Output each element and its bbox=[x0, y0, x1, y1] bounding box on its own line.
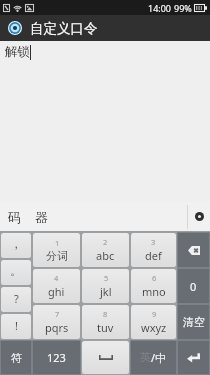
button[interactable]: Delete bbox=[178, 233, 209, 267]
staticText: 器 bbox=[35, 209, 48, 225]
button[interactable]: 6 bbox=[131, 269, 176, 303]
staticText: 分词 bbox=[46, 249, 68, 263]
staticText: def bbox=[145, 248, 162, 263]
button[interactable]: Enter bbox=[178, 341, 209, 374]
staticText: 99% bbox=[174, 2, 192, 14]
button[interactable]: Space bbox=[82, 341, 129, 374]
button[interactable]: 9 bbox=[131, 305, 176, 339]
button[interactable]: 1 bbox=[33, 233, 80, 267]
staticText: 7 bbox=[55, 309, 60, 319]
staticText: 英 bbox=[140, 350, 151, 364]
button[interactable]: ， bbox=[1, 233, 31, 258]
button[interactable]: 5 bbox=[82, 269, 129, 303]
button[interactable]: 。 bbox=[1, 260, 31, 285]
button[interactable]: 3 bbox=[131, 233, 176, 267]
staticText: tuv bbox=[97, 320, 114, 335]
staticText: 码 bbox=[8, 209, 21, 225]
staticText: ! bbox=[15, 318, 18, 333]
button[interactable]: 清空 bbox=[178, 305, 209, 339]
button[interactable]: Hide keyboard bbox=[188, 202, 210, 231]
button[interactable]: 123 bbox=[33, 341, 80, 374]
staticText: 3 bbox=[151, 237, 156, 247]
staticText: jkl bbox=[100, 284, 112, 299]
staticText: 符 bbox=[11, 351, 22, 365]
button[interactable]: 符 bbox=[1, 341, 31, 374]
staticText: wxyz bbox=[141, 320, 167, 335]
staticText: 自定义口令 bbox=[30, 20, 98, 37]
staticText: 8 bbox=[103, 309, 108, 319]
button[interactable]: 0 bbox=[178, 269, 209, 303]
staticText: 1 bbox=[55, 238, 60, 248]
staticText: 0 bbox=[190, 279, 197, 294]
staticText: 解锁 bbox=[5, 44, 30, 60]
button[interactable]: ? bbox=[1, 287, 31, 312]
staticText: mno bbox=[142, 284, 166, 299]
staticText: pqrs bbox=[45, 320, 69, 335]
staticText: 2 bbox=[103, 237, 108, 247]
button[interactable]: 码 bbox=[4, 202, 25, 231]
staticText: 清空 bbox=[183, 315, 205, 329]
staticText: 14:00 bbox=[148, 2, 172, 14]
button[interactable]: 英 bbox=[131, 341, 176, 374]
button[interactable]: 8 bbox=[82, 305, 129, 339]
staticText: abc bbox=[96, 248, 115, 263]
staticText: 4 bbox=[54, 273, 59, 283]
button[interactable]: ! bbox=[1, 314, 31, 339]
button[interactable]: 4 bbox=[33, 269, 80, 303]
staticText: 6 bbox=[152, 273, 157, 283]
staticText: 123 bbox=[47, 350, 66, 365]
staticText: ? bbox=[14, 291, 19, 306]
staticText: /中 bbox=[151, 350, 167, 365]
staticText: ， bbox=[10, 236, 22, 251]
staticText: ghi bbox=[48, 284, 65, 299]
button[interactable]: 器 bbox=[31, 202, 52, 231]
staticText: 9 bbox=[152, 309, 157, 319]
staticText: 5 bbox=[104, 273, 109, 283]
button[interactable]: 2 bbox=[82, 233, 129, 267]
staticText: 。 bbox=[10, 263, 22, 278]
button[interactable]: 7 bbox=[33, 305, 80, 339]
